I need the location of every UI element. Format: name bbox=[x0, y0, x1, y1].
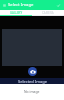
button[interactable]: Navigate up bbox=[1, 2, 7, 8]
staticText: Selected Image bbox=[18, 79, 47, 84]
button[interactable]: CAMERA bbox=[32, 10, 64, 16]
staticText: No image bbox=[24, 89, 40, 94]
staticText: GALLERY bbox=[10, 11, 23, 15]
button[interactable]: Done bbox=[55, 2, 62, 9]
button[interactable]: Take photo bbox=[28, 67, 37, 76]
staticText: Select Image bbox=[8, 2, 34, 8]
staticText: CAMERA bbox=[42, 11, 54, 15]
button[interactable]: GALLERY bbox=[0, 10, 32, 16]
